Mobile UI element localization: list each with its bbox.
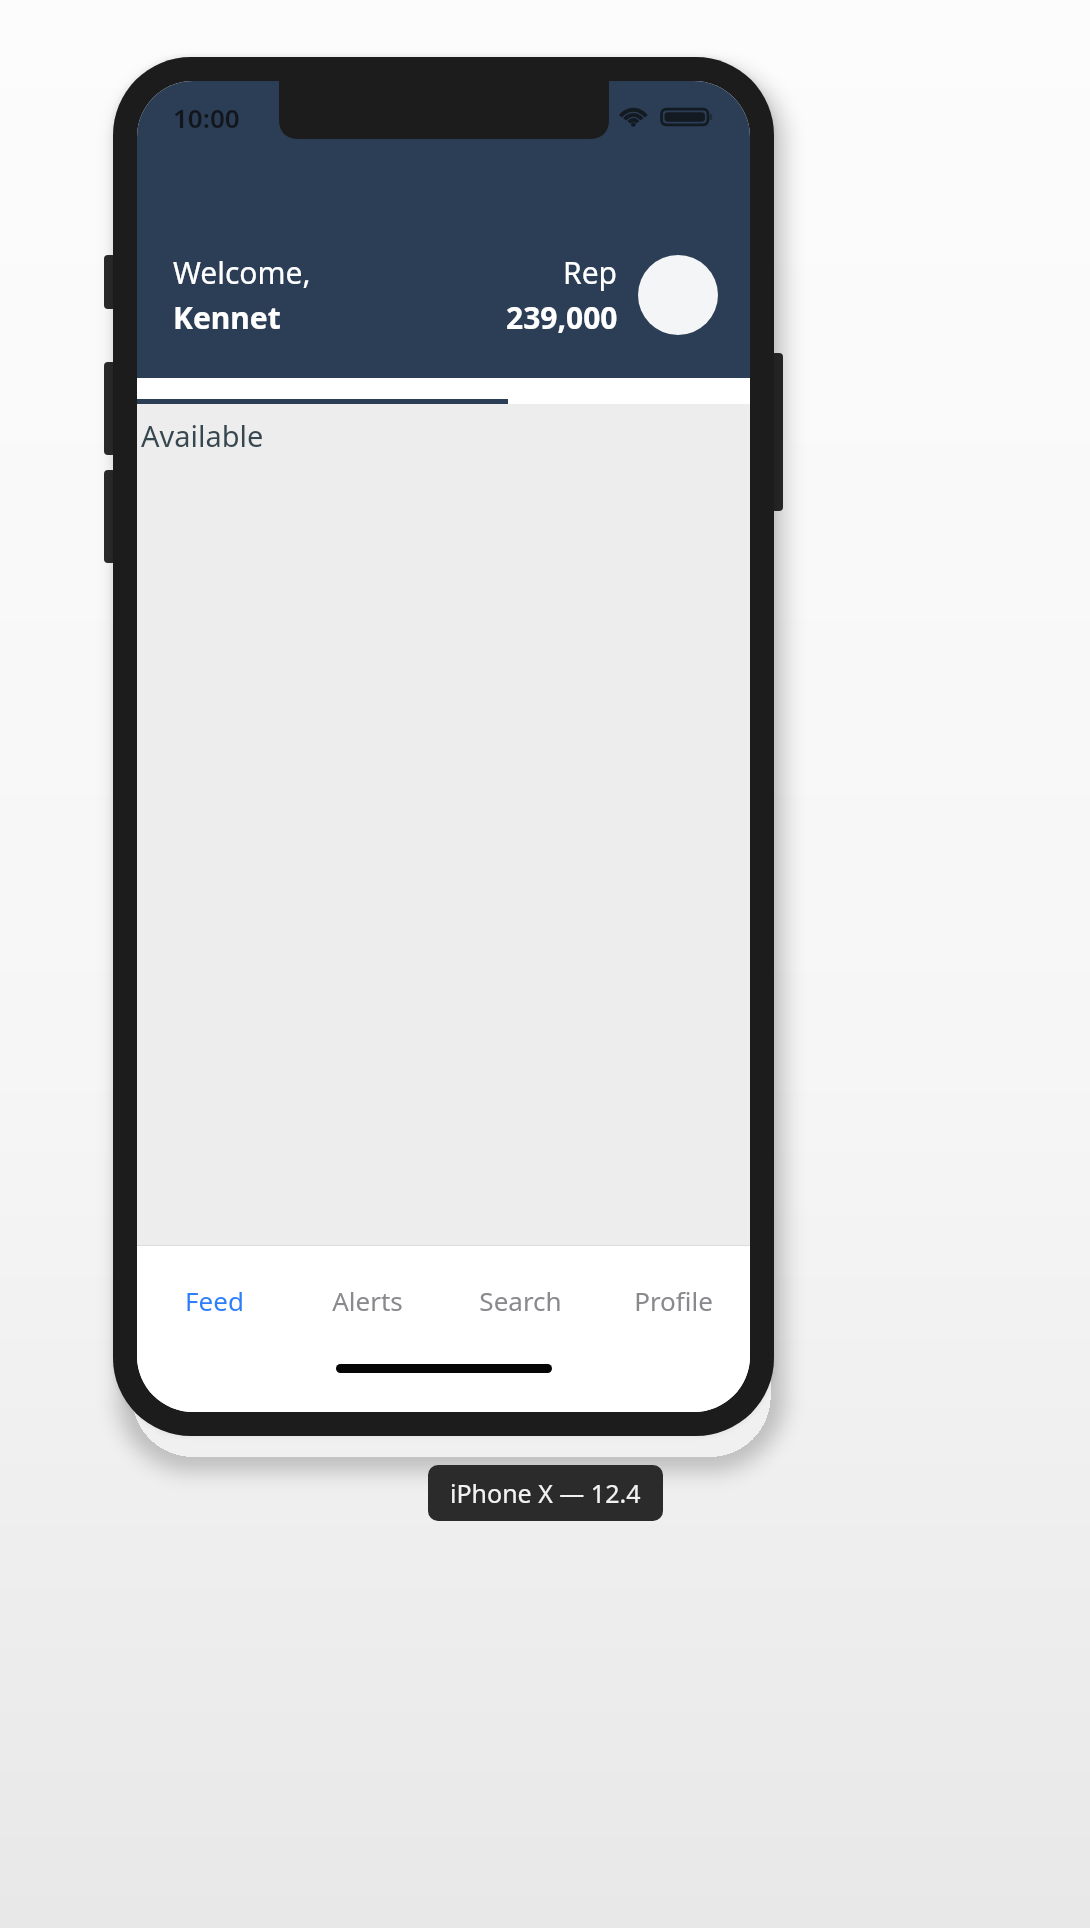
button[interactable]	[137, 378, 750, 404]
button[interactable]: Alerts	[291, 1246, 444, 1354]
button[interactable]: Profile	[597, 1246, 750, 1354]
staticText: Feed	[185, 1283, 244, 1318]
staticText: 10:00	[173, 100, 240, 135]
button[interactable]: Profile avatar	[638, 255, 718, 335]
button[interactable]: Feed	[137, 1246, 291, 1354]
button[interactable]: Search	[444, 1246, 597, 1354]
staticText: 239,000	[506, 297, 618, 338]
staticText: Search	[479, 1283, 562, 1318]
staticText: Rep	[563, 252, 618, 293]
staticText: Welcome,	[173, 252, 311, 293]
staticText: iPhone X — 12.4	[450, 1476, 641, 1510]
staticText: Alerts	[332, 1283, 403, 1318]
staticText: Available	[141, 416, 264, 455]
staticText: Kennet	[173, 297, 281, 338]
staticText: Profile	[634, 1283, 713, 1318]
